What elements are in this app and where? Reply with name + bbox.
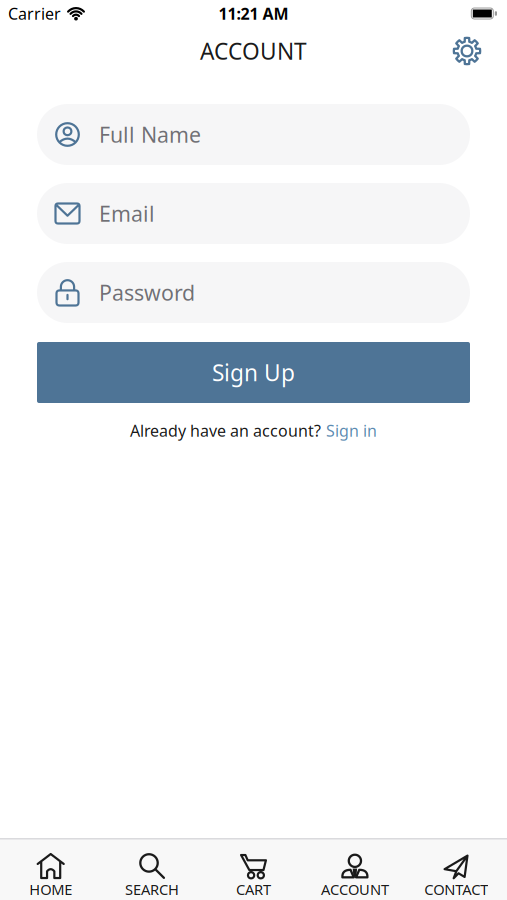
staticText: CONTACT — [424, 879, 488, 899]
button[interactable]: CART — [203, 852, 304, 899]
staticText: Sign Up — [212, 357, 295, 387]
button[interactable]: CONTACT — [406, 852, 507, 899]
staticText: Carrier — [8, 3, 61, 24]
button[interactable]: SEARCH — [101, 852, 203, 899]
button[interactable]: Password — [37, 262, 470, 323]
button[interactable]: Full Name — [37, 104, 470, 165]
staticText: Full Name — [99, 120, 201, 149]
staticText: ACCOUNT — [200, 36, 307, 66]
staticText: ACCOUNT — [321, 879, 389, 899]
button[interactable]: Email — [37, 183, 470, 244]
button[interactable]: Sign Up — [37, 342, 470, 403]
staticText: HOME — [29, 879, 72, 899]
staticText: Already have an account? — [130, 420, 321, 441]
button[interactable]: Settings — [453, 37, 481, 65]
button[interactable]: HOME — [0, 852, 101, 899]
staticText: Email — [99, 199, 155, 228]
staticText: Password — [99, 278, 195, 307]
staticText: Sign in — [326, 420, 377, 441]
staticText: SEARCH — [125, 879, 179, 899]
staticText: CART — [236, 879, 271, 899]
staticText: 11:21 AM — [218, 3, 288, 24]
button[interactable]: Sign in — [326, 420, 377, 441]
button[interactable]: ACCOUNT — [304, 852, 406, 899]
